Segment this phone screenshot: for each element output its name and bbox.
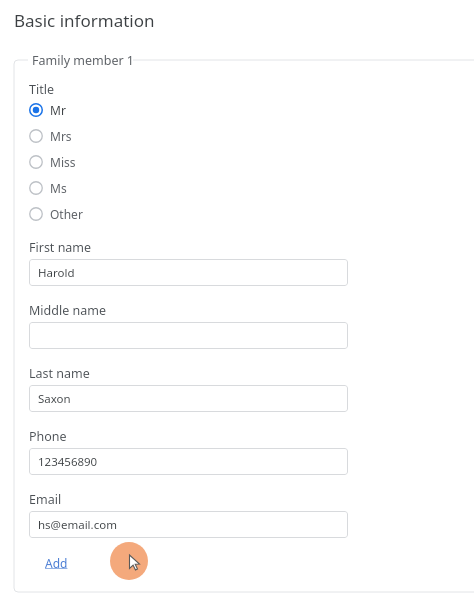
staticText: hs@email.com	[38, 517, 117, 533]
button[interactable]: Miss	[29, 150, 149, 174]
staticText: Basic information	[14, 9, 155, 32]
staticText: Family member 1	[32, 52, 134, 69]
staticText: Mr	[50, 102, 66, 118]
staticText: Miss	[50, 154, 76, 170]
button[interactable]: 123456890	[29, 448, 348, 475]
staticText: 123456890	[38, 454, 98, 470]
button[interactable]: hs@email.com	[29, 511, 348, 538]
staticText: Ms	[50, 180, 67, 196]
staticText: Middle name	[29, 302, 106, 319]
staticText: Title	[29, 81, 54, 98]
button[interactable]: Mrs	[29, 124, 149, 148]
button[interactable]	[29, 322, 348, 349]
staticText: Other	[50, 206, 83, 222]
button[interactable]: Ms	[29, 176, 149, 200]
button[interactable]: Harold	[29, 259, 348, 286]
staticText: First name	[29, 239, 92, 256]
button[interactable]: Saxon	[29, 385, 348, 412]
staticText: Last name	[29, 365, 90, 382]
staticText: Saxon	[38, 391, 71, 407]
staticText: Harold	[38, 265, 75, 281]
other: Pointer	[110, 542, 148, 580]
staticText: Phone	[29, 428, 67, 445]
button[interactable]: Add	[44, 553, 69, 573]
button[interactable]: Other	[29, 202, 149, 226]
staticText: Email	[29, 491, 62, 508]
button[interactable]: Mr	[29, 98, 149, 122]
staticText: Add	[45, 555, 68, 571]
staticText: Mrs	[50, 128, 72, 144]
